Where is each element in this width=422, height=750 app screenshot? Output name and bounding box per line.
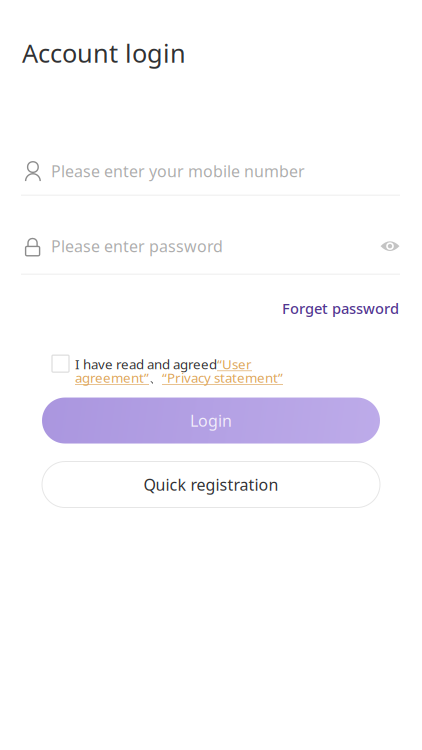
button[interactable]: Login [42, 397, 380, 443]
button[interactable]: Show password [370, 234, 400, 259]
staticText: Forget password [282, 299, 399, 318]
staticText: Quick registration [143, 474, 278, 495]
staticText: “Privacy statement” [162, 369, 283, 386]
staticText: Please enter your mobile number [51, 160, 305, 182]
button[interactable]: Quick registration [42, 461, 380, 507]
staticText: Login [190, 410, 232, 431]
staticText: agreement” [75, 369, 149, 386]
button[interactable]: Agree to terms [52, 355, 69, 372]
staticText: 、 [149, 369, 162, 386]
staticText: I have read and agreed [75, 355, 217, 373]
button[interactable]: Forget password [282, 299, 399, 318]
staticText: Please enter password [51, 235, 223, 257]
staticText: Account login [22, 36, 186, 70]
staticText: “User [217, 355, 252, 373]
